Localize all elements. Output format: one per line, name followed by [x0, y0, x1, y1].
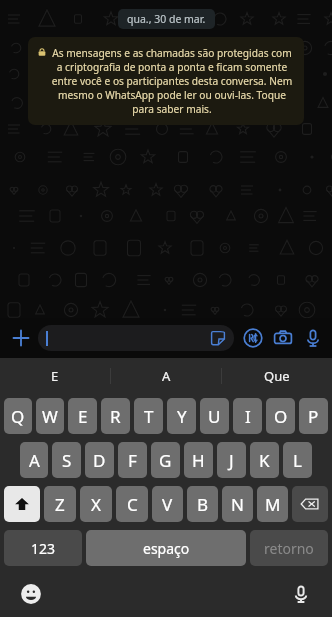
button[interactable]: As mensagens e as chamadas são protegida…: [28, 37, 304, 125]
button[interactable]: Figurinhas: [38, 325, 234, 351]
button[interactable]: retorno: [250, 530, 328, 566]
staticText: V: [162, 493, 173, 516]
staticText: O: [274, 405, 288, 428]
button[interactable]: G: [151, 442, 180, 478]
button[interactable]: B: [187, 486, 218, 522]
staticText: Que: [264, 367, 290, 385]
staticText: Q: [11, 405, 25, 428]
button[interactable]: S: [52, 442, 81, 478]
staticText: D: [93, 449, 106, 472]
button[interactable]: Pagamentos: [242, 327, 264, 349]
staticText: qua., 30 de mar.: [127, 12, 206, 26]
staticText: retorno: [264, 539, 314, 558]
staticText: J: [229, 449, 234, 472]
button[interactable]: E: [68, 398, 97, 434]
staticText: X: [91, 493, 101, 516]
button[interactable]: L: [283, 442, 312, 478]
button[interactable]: H: [184, 442, 213, 478]
staticText: T: [144, 405, 154, 428]
button[interactable]: A: [111, 358, 221, 394]
staticText: M: [265, 493, 281, 516]
staticText: S: [62, 449, 72, 472]
staticText: K: [259, 449, 270, 472]
staticText: G: [159, 449, 172, 472]
staticText: E: [78, 405, 88, 428]
staticText: P: [308, 405, 319, 428]
button[interactable]: qua., 30 de mar.: [118, 9, 215, 29]
staticText: E: [51, 367, 59, 385]
button[interactable]: Áudio: [302, 327, 324, 349]
button[interactable]: Y: [167, 398, 196, 434]
staticText: A: [162, 367, 171, 385]
button[interactable]: Câmera: [272, 327, 294, 349]
staticText: Z: [55, 493, 65, 516]
staticText: F: [128, 449, 137, 472]
button[interactable]: espaço: [86, 530, 246, 566]
button[interactable]: N: [222, 486, 253, 522]
button[interactable]: U: [200, 398, 229, 434]
button[interactable]: Anexar: [8, 325, 34, 351]
button[interactable]: T: [134, 398, 163, 434]
button[interactable]: Ditado: [288, 581, 314, 607]
button[interactable]: F: [118, 442, 147, 478]
button[interactable]: Apagar: [292, 486, 328, 522]
staticText: N: [231, 493, 244, 516]
staticText: C: [127, 493, 138, 516]
button[interactable]: R: [101, 398, 130, 434]
staticText: R: [110, 405, 121, 428]
button[interactable]: 123: [4, 530, 82, 566]
button[interactable]: Z: [44, 486, 76, 522]
button[interactable]: C: [116, 486, 148, 522]
button[interactable]: Que: [222, 358, 332, 394]
staticText: espaço: [143, 539, 190, 558]
button[interactable]: K: [250, 442, 279, 478]
button[interactable]: A: [20, 442, 48, 478]
button[interactable]: P: [299, 398, 328, 434]
button[interactable]: V: [152, 486, 183, 522]
button[interactable]: W: [36, 398, 64, 434]
button[interactable]: I: [233, 398, 262, 434]
button[interactable]: D: [85, 442, 114, 478]
button[interactable]: J: [217, 442, 246, 478]
staticText: A: [29, 449, 40, 472]
button[interactable]: O: [266, 398, 295, 434]
button[interactable]: E: [0, 358, 110, 394]
button[interactable]: M: [257, 486, 288, 522]
other: Figurinhas: [208, 328, 228, 348]
staticText: L: [293, 449, 302, 472]
button[interactable]: X: [80, 486, 112, 522]
staticText: H: [192, 449, 205, 472]
staticText: 123: [31, 539, 56, 558]
button[interactable]: Q: [4, 398, 32, 434]
button[interactable]: Shift: [4, 486, 40, 522]
staticText: B: [197, 493, 209, 516]
staticText: Y: [177, 405, 187, 428]
staticText: As mensagens e as chamadas são protegida…: [50, 46, 294, 116]
button[interactable]: Emoji: [18, 581, 44, 607]
staticText: I: [245, 405, 251, 428]
staticText: U: [208, 405, 221, 428]
staticText: W: [42, 405, 58, 428]
